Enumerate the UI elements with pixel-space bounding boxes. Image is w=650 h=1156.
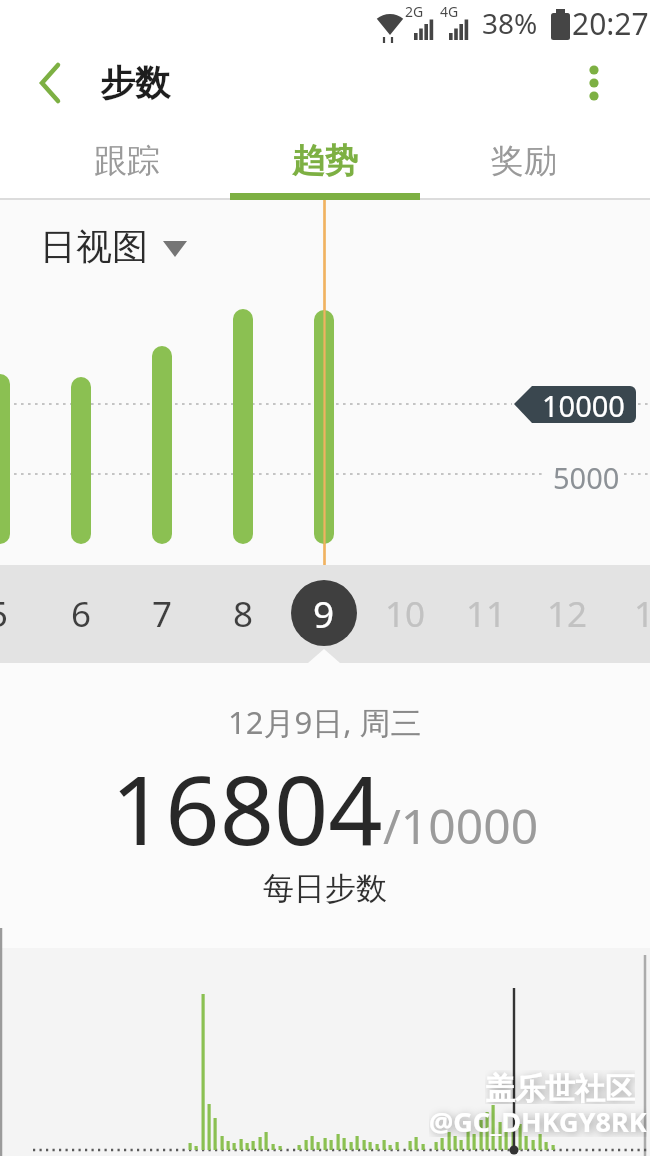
staticText: @GC_DHKGY8RK [429, 1103, 647, 1137]
staticText: 16804 [111, 743, 383, 868]
staticText: 10000 [542, 386, 625, 423]
button[interactable] [20, 52, 80, 114]
staticText: 7 [152, 590, 173, 638]
staticText: 2G [405, 2, 424, 20]
button[interactable]: 奖励 [427, 122, 620, 200]
staticText: 38% [482, 4, 538, 42]
button[interactable]: 跟踪 [30, 122, 223, 200]
staticText: 8 [233, 590, 254, 638]
button[interactable]: 9 [291, 580, 357, 646]
staticText: 奖励 [491, 140, 557, 182]
staticText: 跟踪 [94, 140, 160, 182]
button[interactable]: 日视图 [40, 224, 200, 268]
staticText: 13 [634, 590, 650, 638]
staticText: 11 [466, 590, 507, 638]
staticText: 盖乐世社区 [485, 1070, 635, 1104]
staticText: 5 [0, 590, 9, 638]
staticText: 12月9日, 周三 [228, 701, 422, 743]
staticText: 步数 [100, 61, 170, 105]
staticText: 趋势 [292, 140, 358, 182]
staticText: 6 [71, 590, 92, 638]
staticText: 20:27 [572, 3, 649, 44]
staticText: 日视图 [40, 224, 148, 268]
staticText: 4G [440, 2, 459, 20]
staticText: 9 [313, 588, 335, 638]
staticText: 每日步数 [263, 869, 387, 908]
staticText: 5000 [553, 458, 620, 492]
staticText: 10 [385, 590, 426, 638]
button[interactable]: 趋势 [230, 122, 420, 200]
button[interactable] [565, 52, 625, 114]
staticText: 12 [547, 590, 588, 638]
staticText: /10000 [383, 793, 539, 858]
